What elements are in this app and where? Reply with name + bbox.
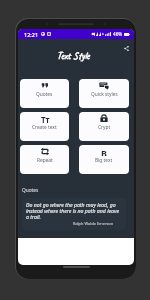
staticText: Ralph Waldo Emerson	[73, 221, 114, 226]
staticText: Crypt	[98, 124, 111, 131]
button[interactable]: Tт	[20, 112, 69, 141]
staticText: Tт	[41, 114, 50, 123]
staticText: Do not go where the path may lead, go in…	[26, 201, 122, 220]
button[interactable]: Repeat	[20, 145, 69, 174]
staticText: B	[101, 147, 107, 156]
staticText: Text Style	[57, 49, 90, 62]
staticText: Repeat	[37, 157, 53, 164]
staticText: 46%	[113, 31, 123, 37]
staticText: Quotes	[22, 187, 39, 194]
button[interactable]: Quick styles	[79, 79, 129, 108]
staticText: Quotes	[36, 91, 53, 98]
button[interactable]: Do not go where the path may lead, go in…	[22, 198, 126, 230]
button[interactable]: B	[79, 145, 129, 174]
staticText: Quick styles	[91, 91, 118, 98]
button[interactable]: Share	[124, 46, 129, 51]
staticText: 12:21	[24, 31, 39, 38]
button[interactable]: Crypt	[79, 112, 129, 141]
staticText: Big text	[95, 157, 113, 164]
staticText: Create text	[32, 124, 57, 131]
button[interactable]: Quotes	[20, 79, 69, 108]
